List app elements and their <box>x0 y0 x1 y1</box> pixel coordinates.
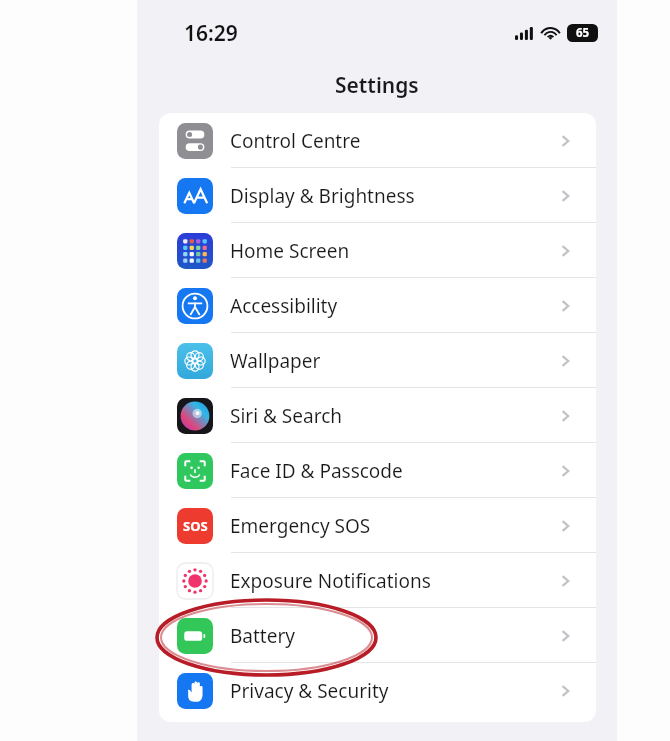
staticText: Control Centre <box>230 128 361 154</box>
button[interactable]: Home Screen <box>159 223 596 278</box>
staticText: Accessibility <box>230 293 338 319</box>
staticText: Exposure Notifications <box>230 568 431 594</box>
staticText: Emergency SOS <box>230 513 371 539</box>
button[interactable]: Wallpaper <box>159 333 596 388</box>
button[interactable]: Exposure Notifications <box>159 553 596 608</box>
staticText: Siri & Search <box>230 403 343 429</box>
button[interactable]: Siri & Search <box>159 388 596 443</box>
staticText: Home Screen <box>230 238 350 264</box>
staticText: 16:29 <box>184 19 238 48</box>
button[interactable]: Battery <box>159 608 596 663</box>
staticText: Privacy & Security <box>230 678 389 704</box>
staticText: Settings <box>335 71 419 100</box>
button[interactable]: Accessibility <box>159 278 596 333</box>
button[interactable]: Control Centre <box>159 113 596 168</box>
staticText: SOS <box>183 517 208 535</box>
staticText: Battery <box>230 623 295 649</box>
button[interactable]: Privacy & Security <box>159 663 596 718</box>
staticText: Face ID & Passcode <box>230 458 403 484</box>
staticText: Wallpaper <box>230 348 321 374</box>
staticText: Display & Brightness <box>230 183 415 209</box>
staticText: 65 <box>576 25 590 41</box>
button[interactable]: Face ID & Passcode <box>159 443 596 498</box>
button[interactable]: Display & Brightness <box>159 168 596 223</box>
button[interactable]: SOS <box>159 498 596 553</box>
